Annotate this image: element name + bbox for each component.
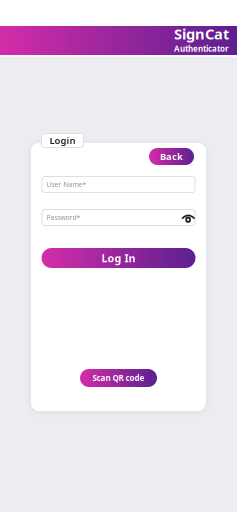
button[interactable]: Password* [41, 209, 195, 226]
staticText: User Name* [46, 180, 86, 189]
button[interactable]: Show password [180, 212, 194, 223]
button[interactable]: Log In [41, 248, 195, 268]
staticText: Password* [46, 213, 80, 222]
staticText: Scan QR code [92, 373, 144, 383]
staticText: Back [160, 150, 183, 163]
staticText: Authenticator [174, 43, 229, 54]
staticText: SignCat [174, 24, 229, 43]
button[interactable]: Login [41, 133, 84, 148]
staticText: Login [49, 134, 75, 147]
button[interactable]: User Name* [41, 176, 195, 193]
button[interactable]: Scan QR code [80, 369, 157, 387]
staticText: Log In [101, 251, 135, 265]
button[interactable]: Back [149, 148, 194, 165]
